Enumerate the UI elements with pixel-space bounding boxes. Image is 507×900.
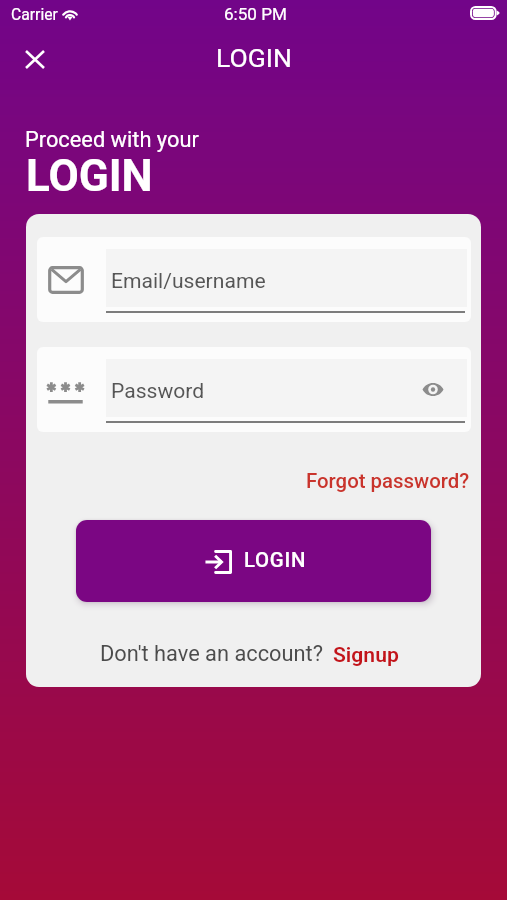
- staticText: Don't have an account?: [100, 641, 323, 667]
- staticText: Carrier: [11, 5, 58, 23]
- button[interactable]: LOGIN: [76, 520, 431, 602]
- button[interactable]: Forgot password?: [300, 463, 476, 499]
- button[interactable]: Signup: [333, 642, 399, 667]
- staticText: LOGIN: [216, 42, 292, 73]
- staticText: Proceed with your: [25, 127, 199, 153]
- staticText: Email/username: [111, 268, 266, 293]
- staticText: Signup: [333, 642, 399, 667]
- button[interactable]: Close: [13, 37, 57, 81]
- staticText: Forgot password?: [306, 469, 470, 493]
- staticText: 6:50 PM: [224, 4, 287, 24]
- staticText: LOGIN: [26, 150, 153, 202]
- staticText: Password: [111, 378, 205, 403]
- button[interactable]: Password: [37, 347, 471, 432]
- button[interactable]: Show password: [417, 373, 449, 405]
- staticText: LOGIN: [244, 548, 307, 572]
- button[interactable]: Email/username: [37, 237, 471, 322]
